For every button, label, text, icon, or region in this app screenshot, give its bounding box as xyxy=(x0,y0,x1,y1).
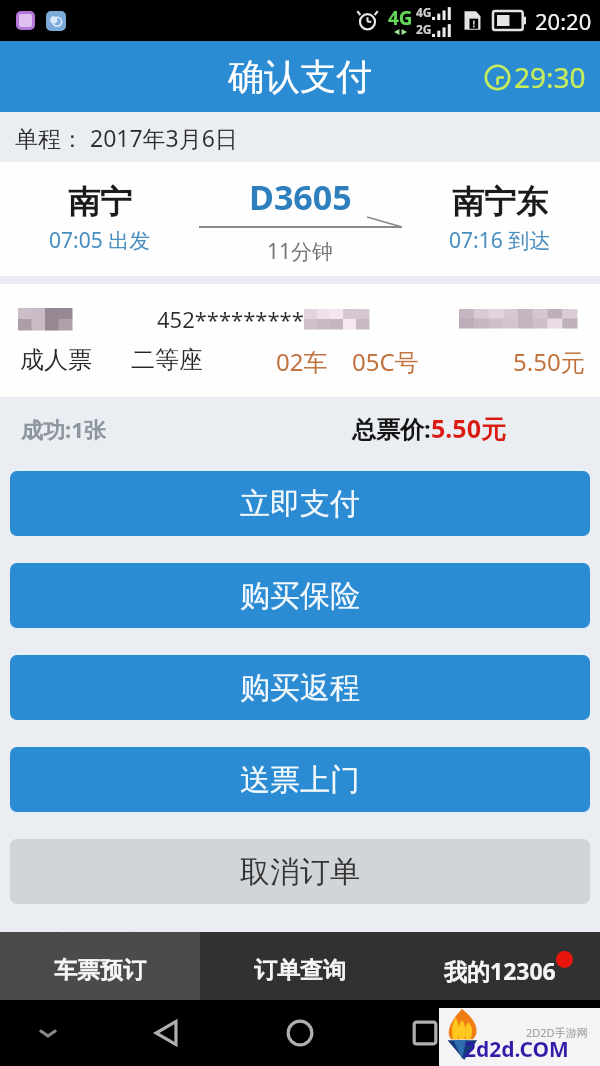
button[interactable]: 我的12306 xyxy=(400,932,600,1000)
staticText: 二等座 xyxy=(131,345,203,375)
button[interactable]: 订单查询 xyxy=(200,932,400,1000)
staticText: 07:16 到达 xyxy=(449,226,551,255)
staticText: 我的12306 xyxy=(444,955,556,986)
staticText: 452*********** xyxy=(157,304,329,334)
staticText: 4G xyxy=(416,4,432,20)
staticText: 立即支付 xyxy=(240,485,360,523)
staticText: 07:05 出发 xyxy=(49,226,151,255)
staticText: 5.50元 xyxy=(513,345,585,378)
staticText: 11分钟 xyxy=(267,237,334,266)
staticText: 南宁 xyxy=(68,182,132,222)
staticText: 确认支付 xyxy=(228,54,372,99)
staticText: 成功:1张 xyxy=(21,414,106,444)
staticText: 2D2D手游网 xyxy=(526,1025,588,1040)
staticText: 5.50元 xyxy=(431,411,506,445)
button[interactable]: Recent apps xyxy=(399,1007,451,1059)
staticText: 订单查询 xyxy=(254,956,346,985)
button[interactable]: 送票上门 xyxy=(10,747,590,812)
staticText: 02车 xyxy=(276,345,328,378)
staticText: 购买保险 xyxy=(240,577,360,615)
button[interactable]: 取消订单 xyxy=(10,839,590,904)
button[interactable]: Home xyxy=(274,1007,326,1059)
staticText: 4G xyxy=(388,5,413,31)
button[interactable]: 购买返程 xyxy=(10,655,590,720)
staticText: D3605 xyxy=(249,174,352,220)
staticText: 05C号 xyxy=(352,345,419,378)
button[interactable]: Back xyxy=(141,1007,193,1059)
button[interactable]: 购买保险 xyxy=(10,563,590,628)
staticText: 取消订单 xyxy=(240,853,360,891)
staticText: 成人票 xyxy=(20,345,92,375)
staticText: 29:30 xyxy=(514,58,586,96)
staticText: 送票上门 xyxy=(240,761,360,799)
staticText: 车票预订 xyxy=(54,956,146,985)
button[interactable]: 车票预订 xyxy=(0,932,200,1000)
staticText: 2d2d.COM xyxy=(464,1035,569,1064)
staticText: 南宁东 xyxy=(452,182,548,222)
button[interactable]: 立即支付 xyxy=(10,471,590,536)
button[interactable]: Hide keyboard xyxy=(22,1007,74,1059)
staticText: 单程： 2017年3月6日 xyxy=(15,122,238,153)
staticText: 购买返程 xyxy=(240,669,360,707)
staticText: 2G xyxy=(416,21,432,37)
staticText: 20:20 xyxy=(535,6,592,36)
staticText: 总票价: xyxy=(352,412,431,445)
